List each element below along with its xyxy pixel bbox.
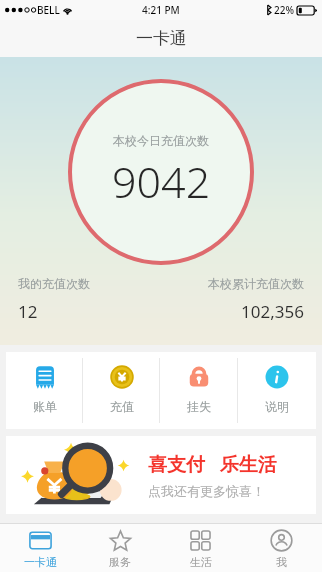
staticText: 本校累计充值次数 <box>208 276 304 291</box>
staticText: 说明 <box>265 399 289 414</box>
staticText: 一卡通 <box>136 28 187 49</box>
button[interactable]: 服务 <box>80 524 160 572</box>
staticText: 账单 <box>33 399 57 414</box>
staticText: 22% <box>274 3 294 17</box>
staticText: 我 <box>276 555 287 569</box>
button[interactable]: 生活 <box>160 524 241 572</box>
staticText: 本校今日充值次数 <box>113 133 209 148</box>
staticText: 我的充值次数 <box>18 276 90 291</box>
staticText: 点我还有更多惊喜！ <box>148 483 265 499</box>
staticText: 一卡通 <box>24 555 57 569</box>
staticText: 4:21 PM <box>142 3 180 17</box>
button[interactable]: 一卡通 <box>0 524 80 572</box>
button[interactable]: 我 <box>241 524 322 572</box>
button[interactable]: 充值 <box>83 352 160 429</box>
staticText: 挂失 <box>187 399 211 414</box>
staticText: BELL <box>37 3 60 17</box>
staticText: 生活 <box>190 555 212 569</box>
staticText: 喜支付 乐生活 <box>148 451 277 477</box>
staticText: 12 <box>18 300 38 323</box>
staticText: 服务 <box>109 555 131 569</box>
staticText: 9042 <box>112 152 211 211</box>
staticText: 充值 <box>110 399 134 414</box>
staticText: 102,356 <box>241 300 304 323</box>
button[interactable]: 挂失 <box>160 352 238 429</box>
button[interactable]: 账单 <box>6 352 83 429</box>
button[interactable]: 说明 <box>238 352 316 429</box>
button[interactable]: 喜支付 乐生活 <box>6 436 316 514</box>
